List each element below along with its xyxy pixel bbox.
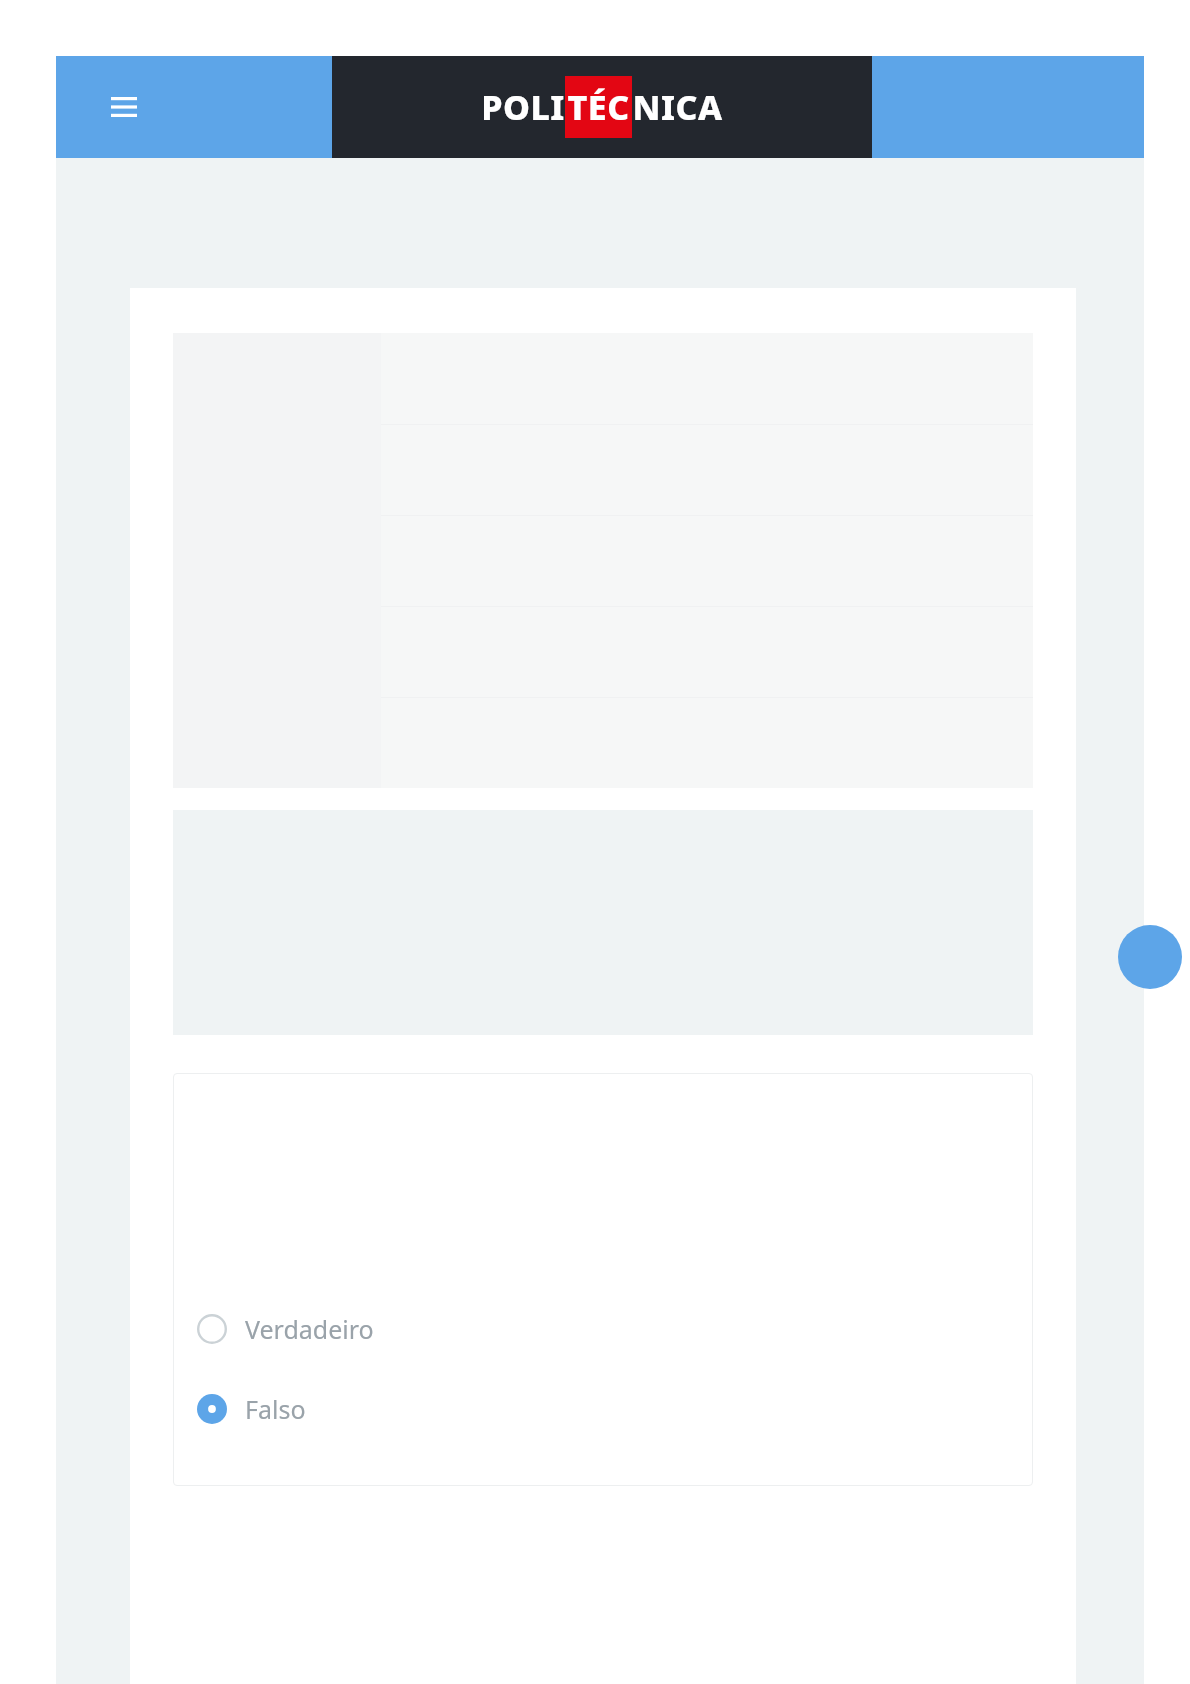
staticText: POLI	[481, 84, 565, 130]
button[interactable]: POLI	[332, 56, 872, 158]
staticText: Verdadeiro	[245, 1312, 374, 1346]
staticText: NICA	[632, 84, 723, 130]
staticText: Falso	[245, 1392, 306, 1426]
button[interactable]: Help	[1118, 925, 1182, 989]
staticText: TÉC	[567, 84, 630, 130]
button[interactable]: Verdadeiro	[193, 1302, 374, 1356]
button[interactable]: Falso	[193, 1382, 306, 1436]
button[interactable]: Menu	[96, 79, 152, 135]
